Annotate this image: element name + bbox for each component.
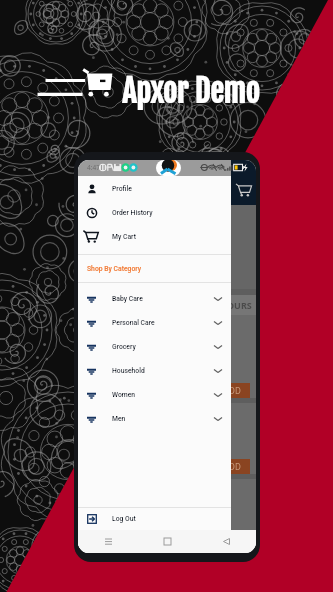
button[interactable]: Women	[78, 383, 231, 407]
staticText: Men	[112, 415, 126, 423]
button[interactable]: ADD	[214, 383, 250, 398]
staticText: Profile	[112, 185, 132, 193]
staticText: Baby Care	[112, 295, 143, 303]
staticText: ADD	[224, 385, 241, 396]
button[interactable]: Recent apps	[78, 530, 138, 553]
other: Expand	[213, 342, 223, 352]
button[interactable]: Grocery	[78, 335, 231, 359]
other: Home	[164, 538, 171, 545]
other: Back	[223, 538, 230, 545]
staticText: Order History	[112, 209, 153, 217]
staticText: Women	[112, 391, 136, 399]
button[interactable]: Profile	[78, 177, 231, 201]
other: Profile photo	[156, 160, 181, 176]
staticText: Shop By Category	[87, 265, 142, 273]
other: Expand	[213, 366, 223, 376]
staticText: Personal Care	[112, 319, 155, 327]
button[interactable]: Back	[197, 530, 256, 553]
button[interactable]: Personal Care	[78, 311, 231, 335]
button[interactable]: My Cart	[78, 225, 231, 249]
staticText: Log Out	[112, 515, 136, 523]
other: Expand	[213, 318, 223, 328]
staticText: 4:47	[87, 163, 100, 172]
other: Expand	[213, 390, 223, 400]
button[interactable]: Home	[138, 530, 197, 553]
staticText: DEAL OF THE HOURS	[161, 299, 252, 311]
other: Expand	[213, 414, 223, 424]
button[interactable]: Men	[78, 407, 231, 431]
other: Expand	[213, 294, 223, 304]
staticText: Apxor Demo	[122, 73, 260, 111]
button[interactable]: ADD	[214, 459, 250, 474]
button[interactable]: Baby Care	[78, 287, 231, 311]
staticText: ADD	[224, 461, 241, 472]
button[interactable]: Order History	[78, 201, 231, 225]
staticText: Grocery	[112, 343, 136, 351]
staticText: My Cart	[112, 233, 136, 241]
button[interactable]: Household	[78, 359, 231, 383]
button[interactable]: Log Out	[78, 508, 231, 530]
other: Recent apps	[105, 538, 112, 545]
button[interactable]: Shop By Category	[78, 255, 231, 282]
staticText: Household	[112, 367, 145, 375]
